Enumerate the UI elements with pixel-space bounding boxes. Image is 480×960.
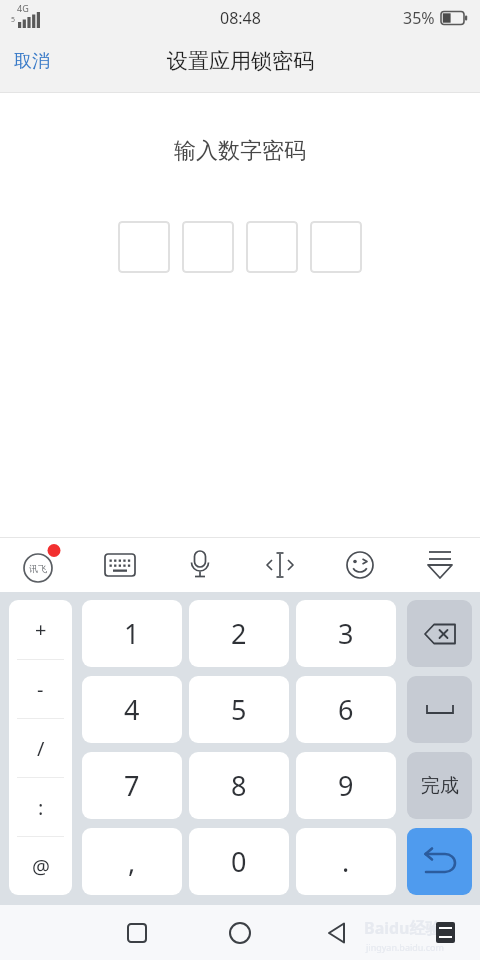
staticText: 取消 xyxy=(14,50,50,73)
button[interactable] xyxy=(407,828,472,895)
staticText: - xyxy=(37,676,44,703)
staticText: 设置应用锁密码 xyxy=(167,48,314,74)
staticText: 讯飞 xyxy=(29,563,47,574)
staticText: 0 xyxy=(231,843,247,880)
staticText: 7 xyxy=(124,767,140,804)
button[interactable]: . xyxy=(296,828,396,895)
button[interactable] xyxy=(160,538,240,592)
button[interactable] xyxy=(400,538,480,592)
staticText: , xyxy=(128,843,136,880)
button[interactable]: - xyxy=(9,660,72,718)
button[interactable]: 4 xyxy=(82,676,182,743)
button[interactable]: 6 xyxy=(296,676,396,743)
staticText: + xyxy=(35,616,47,643)
button[interactable]: 完成 xyxy=(407,752,472,819)
button[interactable]: 5 xyxy=(189,676,289,743)
staticText: 35% xyxy=(403,7,435,29)
button[interactable]: 9 xyxy=(296,752,396,819)
button[interactable] xyxy=(240,538,320,592)
staticText: 08:48 xyxy=(220,7,261,29)
button[interactable] xyxy=(320,538,400,592)
button[interactable] xyxy=(407,676,472,743)
staticText: 完成 xyxy=(421,774,459,798)
staticText: @ xyxy=(32,853,50,880)
button[interactable]: @ xyxy=(9,837,72,895)
staticText: / xyxy=(37,735,45,762)
staticText: Baidu经验 xyxy=(364,917,442,939)
button[interactable] xyxy=(124,920,150,946)
button[interactable]: 3 xyxy=(296,600,396,667)
staticText: jingyan.baidu.com xyxy=(366,941,444,953)
button[interactable]: 7 xyxy=(82,752,182,819)
button[interactable]: 讯飞 xyxy=(0,538,80,592)
staticText: 5 xyxy=(231,691,247,728)
button[interactable] xyxy=(407,600,472,667)
button[interactable] xyxy=(246,221,298,273)
button[interactable]: 1 xyxy=(82,600,182,667)
staticText: 3 xyxy=(338,615,354,652)
staticText: 1 xyxy=(124,615,140,652)
button[interactable]: + xyxy=(9,600,72,659)
button[interactable]: 取消 xyxy=(6,45,58,84)
staticText: 4 xyxy=(124,691,140,728)
staticText: 6 xyxy=(338,691,354,728)
button[interactable]: 2 xyxy=(189,600,289,667)
staticText: : xyxy=(38,794,44,821)
button[interactable]: / xyxy=(9,719,72,777)
button[interactable] xyxy=(324,920,350,946)
button[interactable] xyxy=(80,538,160,592)
button[interactable] xyxy=(118,221,170,273)
staticText: 9 xyxy=(338,767,354,804)
button[interactable] xyxy=(227,920,253,946)
button[interactable]: 0 xyxy=(189,828,289,895)
button[interactable] xyxy=(310,221,362,273)
staticText: . xyxy=(342,843,350,880)
button[interactable]: , xyxy=(82,828,182,895)
button[interactable]: : xyxy=(9,778,72,836)
staticText: 2 xyxy=(231,615,247,652)
staticText: 8 xyxy=(231,767,247,804)
button[interactable]: 8 xyxy=(189,752,289,819)
staticText: 5 xyxy=(11,15,16,25)
button[interactable] xyxy=(182,221,234,273)
staticText: 4G xyxy=(17,2,29,14)
staticText: 输入数字密码 xyxy=(174,137,306,165)
